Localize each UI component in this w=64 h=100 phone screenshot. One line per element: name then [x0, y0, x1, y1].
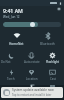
button[interactable]: Cast [42, 68, 63, 82]
staticText: Tap to restart and install it later [12, 93, 52, 97]
staticText: System update available now [12, 88, 54, 92]
staticText: HomeNet [9, 42, 24, 46]
button[interactable]: Location [21, 68, 42, 82]
staticText: Wed, Jun 12 [3, 15, 20, 19]
button[interactable]: Settings [57, 7, 61, 11]
staticText: Bluetooth [40, 42, 55, 46]
button[interactable]: Flashlight [42, 51, 63, 65]
button[interactable]: Auto-rotate [21, 51, 42, 65]
staticText: Location [26, 77, 38, 81]
button[interactable]: Torch [1, 68, 21, 82]
staticText: Auto-rotate [24, 60, 40, 64]
staticText: Flashlight [46, 60, 60, 64]
button[interactable]: Do Not Disturb [1, 51, 21, 65]
staticText: 9:41 AM [3, 7, 23, 14]
button[interactable] [3, 22, 61, 27]
button[interactable]: HomeNet [2, 30, 31, 48]
button[interactable]: Bluetooth [33, 30, 62, 48]
staticText: Cast [50, 77, 56, 81]
staticText: Torch [7, 77, 15, 81]
staticText: Do Not Disturb [1, 60, 21, 64]
button[interactable]: System update available now [1, 87, 63, 98]
